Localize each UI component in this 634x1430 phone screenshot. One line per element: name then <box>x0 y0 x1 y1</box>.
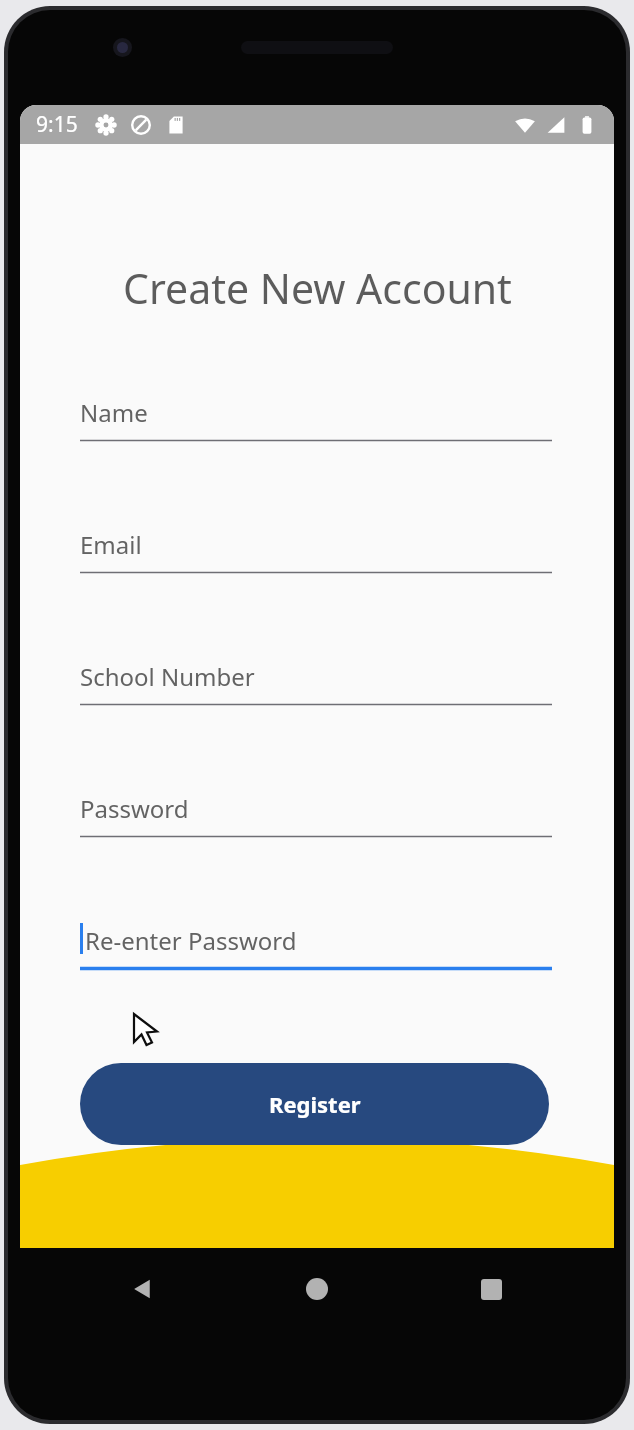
button[interactable]: School Number <box>80 650 552 714</box>
staticText: Name <box>80 396 148 429</box>
button[interactable]: Register <box>80 1063 549 1145</box>
button[interactable]: Re-enter Password <box>80 914 552 978</box>
button[interactable]: Name <box>80 386 552 450</box>
staticText: Re-enter Password <box>85 924 297 957</box>
staticText: Create New Account <box>123 260 512 316</box>
staticText: Register <box>269 1089 361 1119</box>
button[interactable]: Password <box>80 782 552 846</box>
button[interactable]: Home <box>286 1262 348 1316</box>
button[interactable]: Recent apps <box>460 1262 522 1316</box>
button[interactable]: Back <box>112 1262 174 1316</box>
button[interactable]: Email <box>80 518 552 582</box>
staticText: School Number <box>80 660 255 693</box>
staticText: Email <box>80 528 142 561</box>
staticText: Password <box>80 792 189 825</box>
staticText: 9:15 <box>36 110 78 139</box>
